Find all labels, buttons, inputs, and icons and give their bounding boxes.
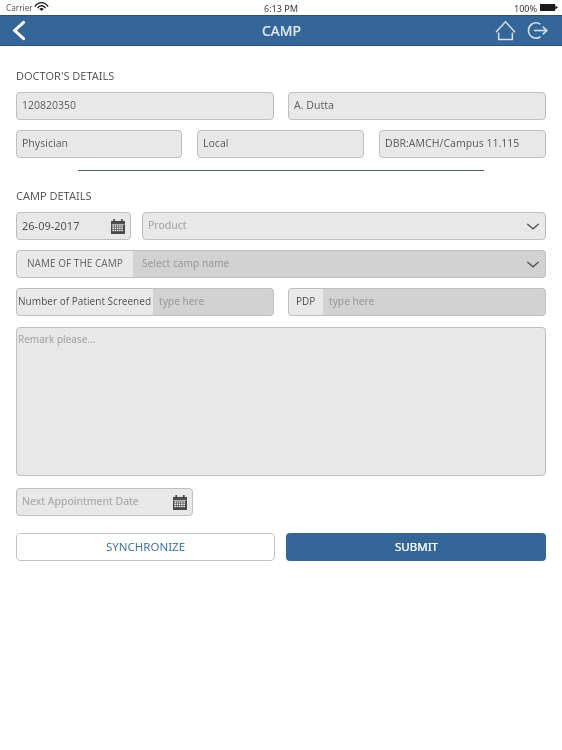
button[interactable]: Home (490, 15, 521, 46)
button[interactable]: Logout (524, 15, 555, 46)
staticText: Number of Patient Screened (18, 294, 152, 308)
staticText: CAMP (262, 21, 301, 40)
button[interactable]: SYNCHRONIZE (16, 533, 275, 561)
staticText: Physician (22, 136, 69, 150)
staticText: NAME OF THE CAMP (27, 256, 123, 270)
button[interactable]: DBR:AMCH/Campus 11.115 (379, 130, 546, 158)
button[interactable]: Physician (16, 130, 182, 158)
staticText: 6:13 PM (264, 2, 298, 14)
staticText: PDP (296, 294, 316, 308)
staticText: Select camp name (142, 256, 230, 270)
button[interactable]: Next Appointment Date (16, 488, 193, 516)
button[interactable]: Remark please... (16, 327, 546, 476)
staticText: 100% (514, 2, 538, 14)
button[interactable]: Product (142, 212, 546, 240)
button[interactable]: 26-09-2017 (16, 212, 131, 240)
staticText: SYNCHRONIZE (106, 539, 186, 555)
button[interactable]: Local (197, 130, 364, 158)
staticText: 26-09-2017 (22, 218, 80, 233)
button[interactable]: Back (0, 15, 38, 46)
button[interactable]: 120820350 (16, 92, 274, 120)
staticText: Next Appointment Date (22, 494, 139, 508)
staticText: Carrier (6, 2, 33, 13)
staticText: DBR:AMCH/Campus 11.115 (385, 136, 520, 150)
staticText: type here (159, 294, 205, 308)
button[interactable]: PDP (288, 288, 546, 316)
staticText: SUBMIT (395, 539, 438, 555)
staticText: Local (203, 136, 229, 150)
button[interactable]: Number of Patient Screened (16, 288, 274, 316)
button[interactable]: A. Dutta (288, 92, 546, 120)
staticText: Remark please... (18, 332, 96, 346)
button[interactable]: NAME OF THE CAMP (16, 250, 546, 278)
staticText: type here (329, 294, 375, 308)
staticText: 120820350 (22, 98, 77, 112)
staticText: CAMP DETAILS (16, 188, 92, 203)
staticText: Product (148, 218, 187, 232)
staticText: DOCTOR'S DETAILS (16, 68, 115, 83)
staticText: A. Dutta (294, 98, 334, 112)
button[interactable]: SUBMIT (286, 533, 546, 561)
